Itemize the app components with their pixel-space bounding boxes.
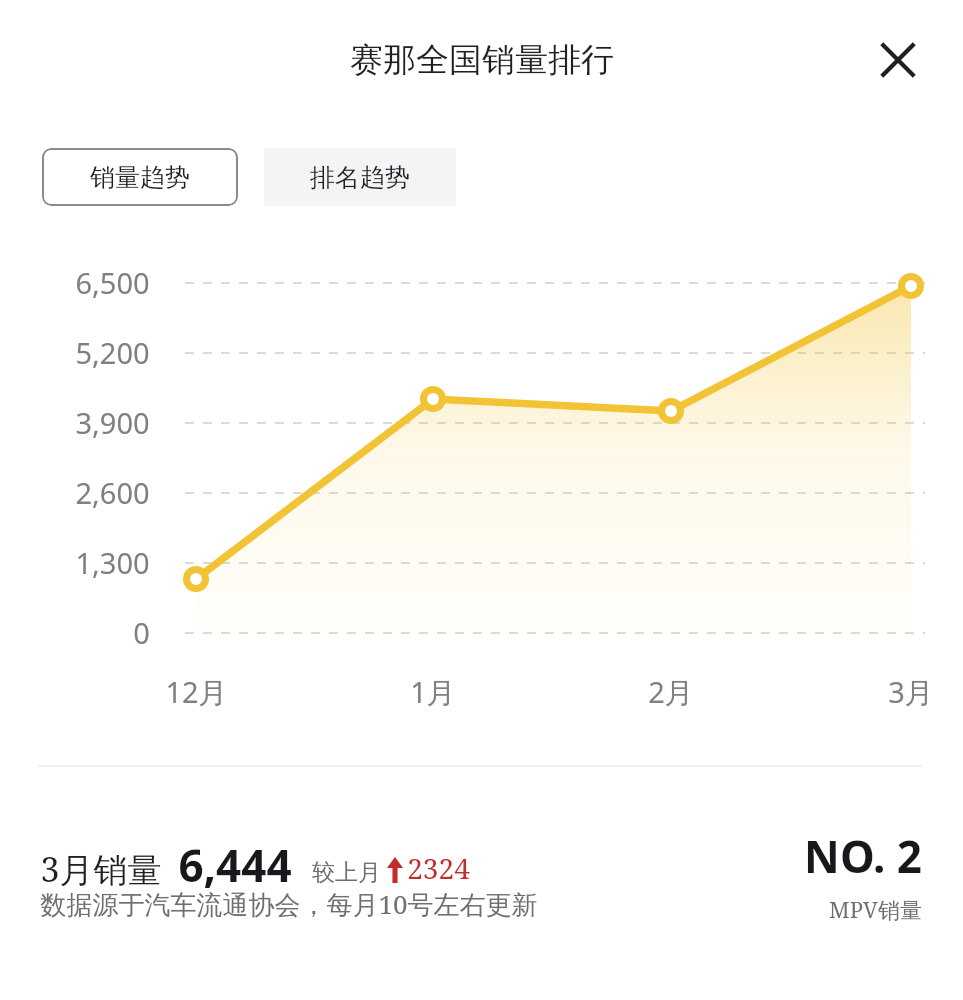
staticText: 1,300	[75, 543, 150, 582]
staticText: 12月	[165, 672, 228, 712]
staticText: 3,900	[75, 403, 150, 442]
staticText: 3月	[888, 672, 934, 712]
button[interactable]: Close	[864, 26, 932, 94]
staticText: 2,600	[75, 473, 150, 512]
staticText: 2月	[648, 672, 694, 712]
staticText: 5,200	[75, 333, 150, 372]
staticText: 销量趋势	[90, 162, 190, 193]
staticText: 排名趋势	[310, 162, 410, 193]
staticText: MPV销量	[829, 894, 922, 924]
staticText: NO. 2	[804, 826, 922, 886]
staticText: 2324	[407, 849, 470, 887]
staticText: 赛那全国销量排行	[350, 39, 614, 81]
staticText: 6,444	[178, 835, 292, 895]
staticText: 0	[133, 613, 150, 652]
staticText: 较上月	[312, 858, 381, 887]
staticText: 数据源于汽车流通协会，每月10号左右更新	[40, 886, 538, 922]
staticText: 1月	[410, 672, 456, 712]
button[interactable]: 销量趋势	[42, 148, 238, 206]
button[interactable]: 排名趋势	[264, 148, 456, 206]
staticText: 3月销量	[40, 846, 162, 892]
staticText: 6,500	[75, 263, 150, 302]
